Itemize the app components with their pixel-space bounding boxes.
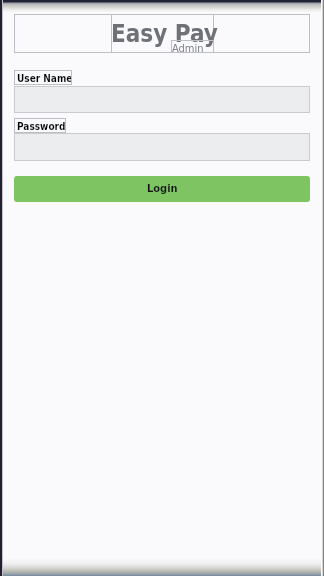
staticText: Password [17, 121, 66, 133]
button[interactable]: Login [14, 176, 310, 202]
button[interactable]: Password input field [14, 133, 310, 161]
staticText: Easy Pay [111, 20, 218, 48]
staticText: Login [147, 182, 178, 195]
staticText: User Name [17, 73, 73, 85]
button[interactable]: User Name input field [14, 86, 310, 113]
staticText: Admin [172, 42, 204, 55]
